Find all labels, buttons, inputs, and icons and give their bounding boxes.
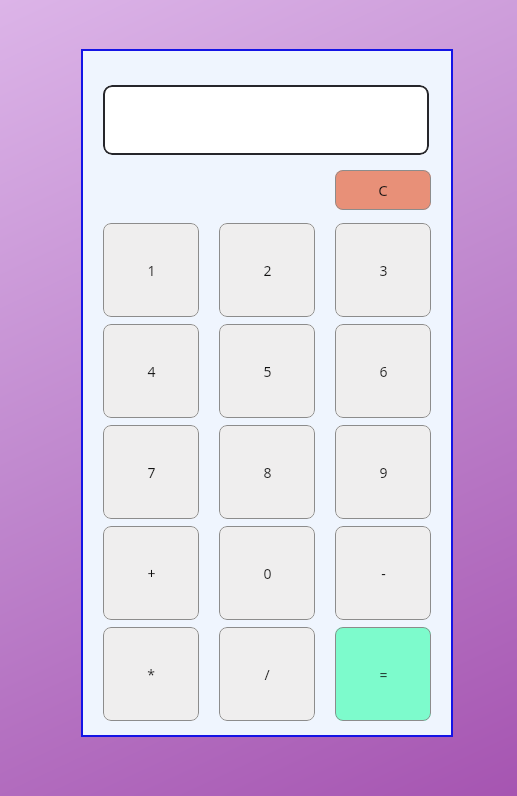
staticText: - <box>381 564 386 583</box>
button[interactable]: 0 <box>219 526 315 620</box>
button[interactable]: / <box>219 627 315 721</box>
staticText: 8 <box>263 463 272 482</box>
staticText: 5 <box>263 362 272 381</box>
staticText: 2 <box>263 261 272 280</box>
button[interactable]: C <box>335 170 431 210</box>
button[interactable]: 7 <box>103 425 199 519</box>
staticText: 6 <box>379 362 388 381</box>
button[interactable]: Display <box>103 85 429 155</box>
button[interactable]: = <box>335 627 431 721</box>
staticText: 3 <box>379 261 388 280</box>
button[interactable]: 8 <box>219 425 315 519</box>
staticText: 7 <box>147 463 156 482</box>
button[interactable]: + <box>103 526 199 620</box>
staticText: + <box>147 564 156 583</box>
staticText: 0 <box>263 564 272 583</box>
button[interactable]: 1 <box>103 223 199 317</box>
button[interactable]: * <box>103 627 199 721</box>
staticText: 9 <box>379 463 388 482</box>
staticText: C <box>378 180 388 200</box>
button[interactable]: 3 <box>335 223 431 317</box>
staticText: * <box>147 665 155 684</box>
staticText: = <box>379 665 388 684</box>
staticText: 4 <box>147 362 156 381</box>
button[interactable]: 4 <box>103 324 199 418</box>
button[interactable]: 6 <box>335 324 431 418</box>
button[interactable]: 2 <box>219 223 315 317</box>
button[interactable]: - <box>335 526 431 620</box>
staticText: 1 <box>147 261 156 280</box>
staticText: / <box>264 665 270 684</box>
button[interactable]: 5 <box>219 324 315 418</box>
button[interactable]: 9 <box>335 425 431 519</box>
